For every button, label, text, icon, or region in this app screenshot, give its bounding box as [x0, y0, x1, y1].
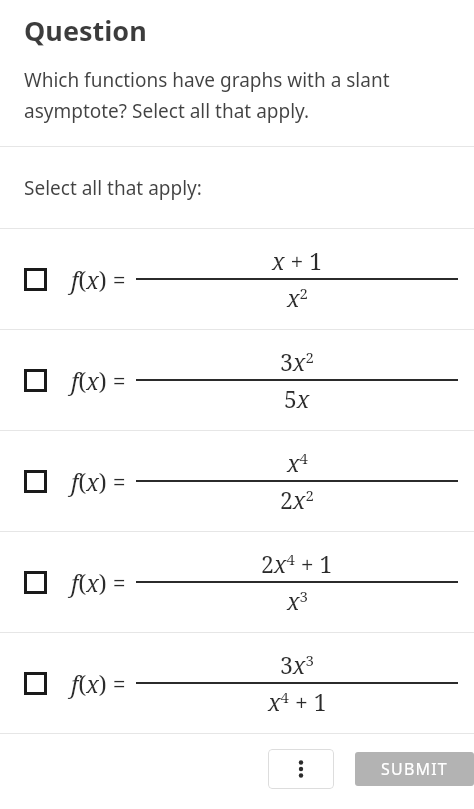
staticText: 2x2: [280, 484, 314, 515]
button[interactable]: SUBMIT: [355, 752, 474, 786]
button[interactable]: f(x) =: [0, 633, 474, 733]
staticText: Question: [24, 12, 147, 49]
button[interactable]: f(x) =: [0, 431, 474, 531]
staticText: x4 + 1: [268, 686, 327, 717]
staticText: f(x) =: [71, 365, 132, 396]
staticText: SUBMIT: [381, 758, 448, 780]
button[interactable]: More options: [268, 749, 334, 789]
button[interactable]: f(x) =: [0, 532, 474, 632]
staticText: 3x2: [280, 346, 314, 377]
staticText: 2x4 + 1: [261, 548, 333, 579]
staticText: f(x) =: [71, 466, 132, 497]
staticText: Which functions have graphs with a slant…: [24, 67, 450, 124]
button[interactable]: f(x) =: [0, 229, 474, 329]
staticText: x2: [287, 282, 308, 313]
staticText: x4: [287, 447, 308, 478]
staticText: x + 1: [272, 245, 323, 276]
staticText: f(x) =: [71, 264, 132, 295]
staticText: 3x3: [280, 649, 314, 680]
staticText: x3: [287, 585, 308, 616]
button[interactable]: f(x) =: [0, 330, 474, 430]
staticText: f(x) =: [71, 567, 132, 598]
staticText: f(x) =: [71, 668, 132, 699]
staticText: Select all that apply:: [24, 175, 202, 201]
staticText: 5x: [284, 383, 310, 414]
